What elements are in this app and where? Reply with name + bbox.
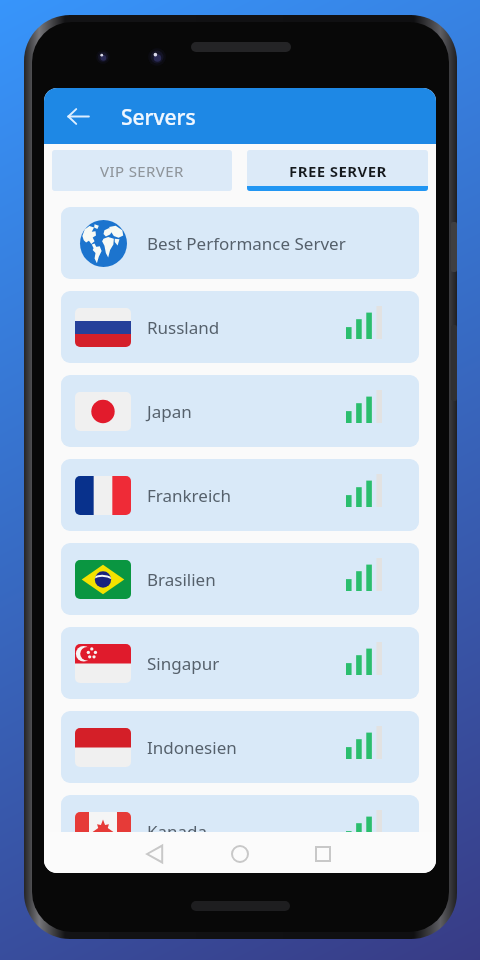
button[interactable]: Indonesien: [61, 711, 419, 783]
staticText: VIP SERVER: [100, 161, 184, 181]
button[interactable]: Best Performance Server: [61, 207, 419, 279]
staticText: Frankreich: [147, 484, 231, 507]
button[interactable]: Brasilien: [61, 543, 419, 615]
button[interactable]: Singapur: [61, 627, 419, 699]
button[interactable]: Frankreich: [61, 459, 419, 531]
button[interactable]: FREE SERVER: [247, 150, 428, 191]
staticText: Singapur: [147, 652, 220, 675]
staticText: Russland: [147, 316, 220, 339]
button[interactable]: Kanada: [61, 795, 419, 867]
staticText: Kanada: [147, 820, 208, 843]
staticText: FREE SERVER: [289, 161, 387, 181]
button[interactable]: VIP SERVER: [52, 150, 232, 191]
staticText: Brasilien: [147, 568, 216, 591]
staticText: Japan: [147, 400, 192, 423]
button[interactable]: Back: [57, 95, 99, 137]
button[interactable]: Back: [136, 835, 174, 873]
button[interactable]: Russland: [61, 291, 419, 363]
button[interactable]: Japan: [61, 375, 419, 447]
button[interactable]: Home: [221, 835, 259, 873]
staticText: Indonesien: [147, 736, 237, 759]
button[interactable]: Recent apps: [304, 835, 342, 873]
staticText: Servers: [121, 103, 196, 132]
staticText: Best Performance Server: [147, 232, 346, 255]
